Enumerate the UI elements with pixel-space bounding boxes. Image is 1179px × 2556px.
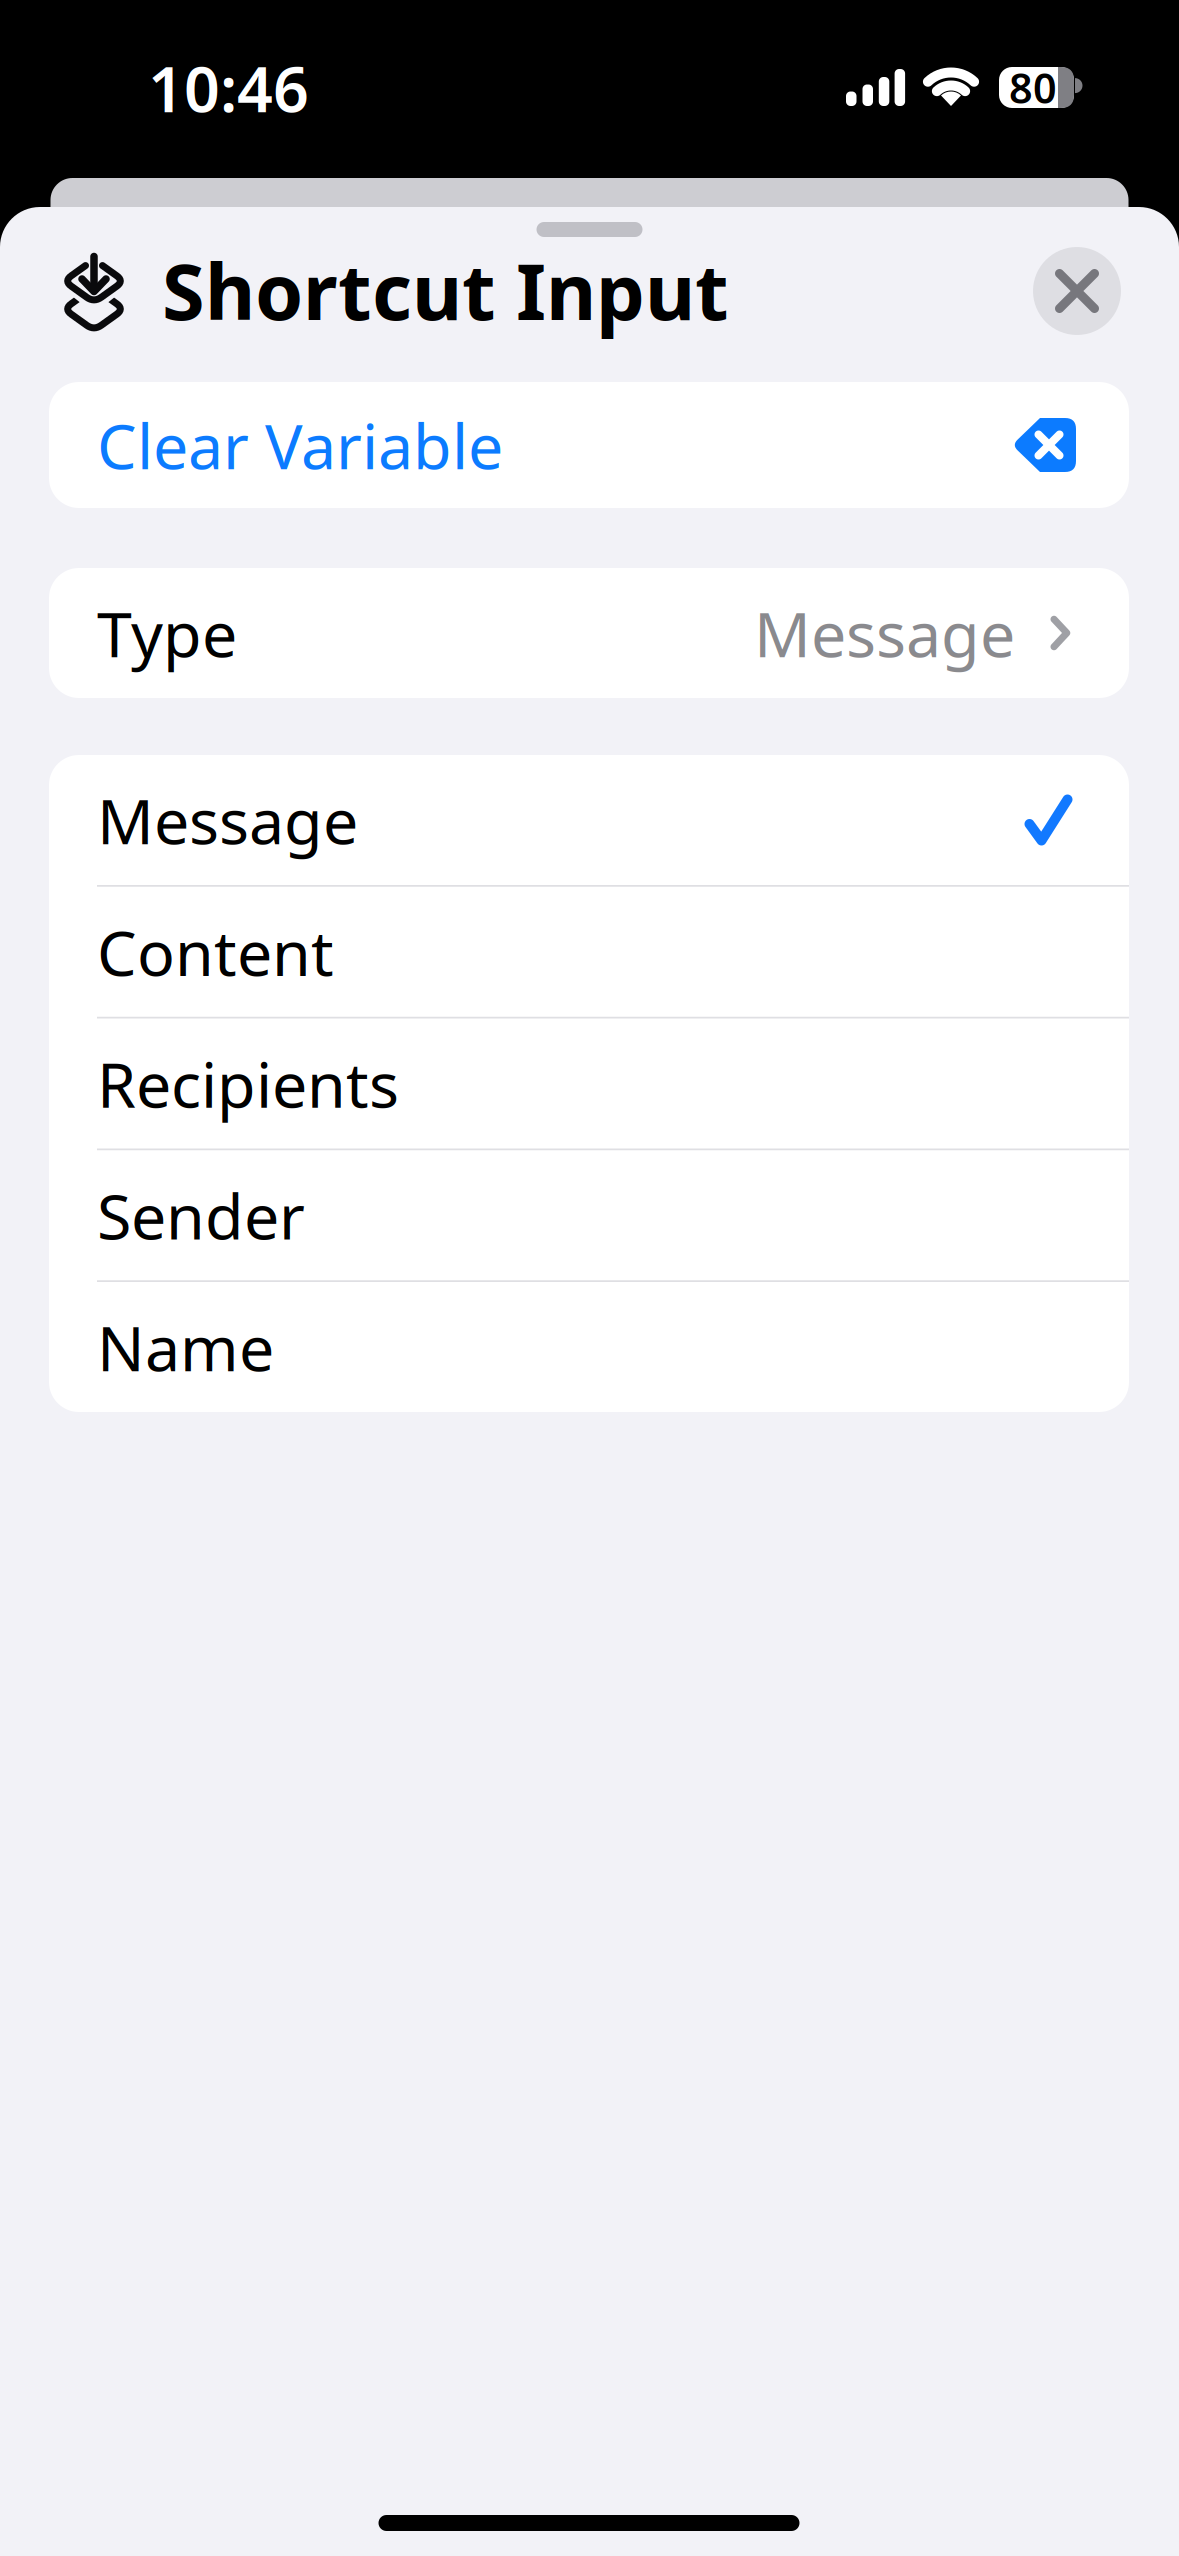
staticText: Message <box>754 591 1015 675</box>
staticText: Sender <box>97 1174 305 1257</box>
button[interactable]: Name <box>49 1282 1129 1412</box>
button[interactable]: Clear Variable <box>49 382 1129 508</box>
staticText: Clear Variable <box>97 403 503 487</box>
button[interactable]: Content <box>49 887 1129 1017</box>
staticText: 10:46 <box>148 46 309 130</box>
staticText: Recipients <box>97 1042 399 1125</box>
staticText: Name <box>97 1305 274 1389</box>
staticText: Message <box>97 778 358 862</box>
staticText: Type <box>97 591 237 675</box>
button[interactable]: Type <box>49 568 1129 698</box>
staticText: Shortcut Input <box>162 239 729 341</box>
button[interactable]: Message <box>49 755 1129 885</box>
button[interactable]: Recipients <box>49 1018 1129 1148</box>
button[interactable]: Sender <box>49 1150 1129 1280</box>
staticText: Content <box>97 910 334 993</box>
staticText: 80 <box>1009 60 1057 115</box>
button[interactable]: Close <box>1033 247 1121 335</box>
